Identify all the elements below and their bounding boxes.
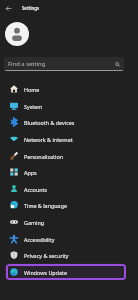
button[interactable]: Personalization (6, 148, 126, 164)
button[interactable]: Bluetooth & devices (6, 114, 126, 130)
button[interactable]: Accessibility (6, 231, 126, 247)
staticText: Apps (24, 169, 37, 176)
button[interactable]: Accounts (6, 181, 126, 197)
button[interactable]: Find a setting (4, 57, 124, 71)
staticText: System (24, 103, 43, 110)
staticText: Bluetooth & devices (24, 119, 75, 126)
staticText: Privacy & security (24, 252, 69, 259)
button[interactable]: Time & language (6, 197, 126, 213)
staticText: Windows Update (24, 269, 68, 276)
staticText: Accounts (24, 186, 48, 193)
staticText: Personalization (24, 153, 63, 160)
button[interactable]: Windows Update (6, 264, 126, 280)
staticText: Settings (22, 5, 40, 11)
button[interactable]: Account (5, 22, 29, 46)
button[interactable]: System (6, 98, 126, 114)
button[interactable]: Network & internet (6, 131, 126, 147)
staticText: Home (24, 86, 40, 93)
button[interactable]: Apps (6, 164, 126, 180)
staticText: Accessibility (24, 236, 55, 243)
button[interactable]: Privacy & security (6, 247, 126, 263)
button[interactable]: Home (6, 81, 126, 97)
button[interactable]: Back (0, 0, 17, 16)
staticText: Gaming (24, 219, 45, 226)
staticText: Find a setting (8, 60, 46, 68)
staticText: Time & language (24, 202, 67, 209)
staticText: Network & internet (24, 136, 73, 143)
button[interactable]: Gaming (6, 214, 126, 230)
